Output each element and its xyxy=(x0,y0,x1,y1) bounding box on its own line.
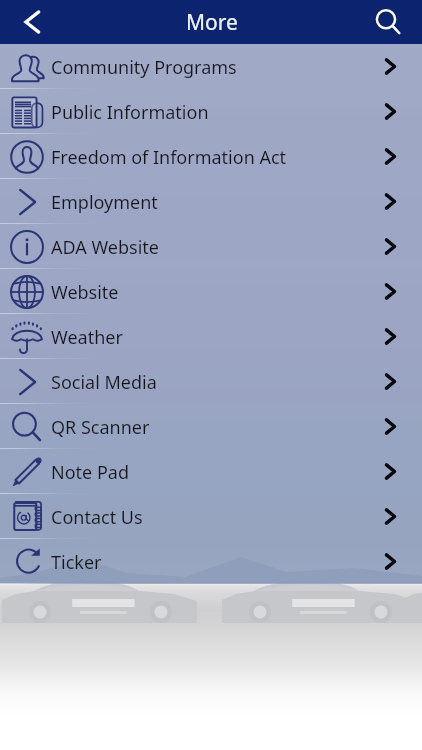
button[interactable]: Community Programs xyxy=(0,44,422,89)
button[interactable]: Weather xyxy=(0,314,422,359)
button[interactable]: Ticker xyxy=(0,539,422,584)
button[interactable]: ADA Website xyxy=(0,224,422,269)
staticText: Public Information xyxy=(51,100,209,125)
staticText: Freedom of Information Act xyxy=(51,145,287,170)
staticText: Contact Us xyxy=(51,505,143,530)
staticText: QR Scanner xyxy=(51,415,150,440)
staticText: ADA Website xyxy=(51,235,159,260)
button[interactable]: Public Information xyxy=(0,89,422,134)
button[interactable]: Freedom of Information Act xyxy=(0,134,422,179)
button[interactable]: Employment xyxy=(0,179,422,224)
button[interactable]: Website xyxy=(0,269,422,314)
staticText: Employment xyxy=(51,190,158,215)
button[interactable]: QR Scanner xyxy=(0,404,422,449)
staticText: Ticker xyxy=(51,550,102,575)
button[interactable]: Note Pad xyxy=(0,449,422,494)
staticText: Weather xyxy=(51,325,123,350)
staticText: Note Pad xyxy=(51,460,129,485)
button[interactable]: Social Media xyxy=(0,359,422,404)
staticText: Website xyxy=(51,280,119,305)
button[interactable]: Search xyxy=(366,0,422,44)
staticText: Social Media xyxy=(51,370,157,395)
button[interactable]: Back xyxy=(0,0,58,44)
staticText: Community Programs xyxy=(51,55,237,80)
staticText: More xyxy=(186,8,238,37)
button[interactable]: Contact Us xyxy=(0,494,422,539)
